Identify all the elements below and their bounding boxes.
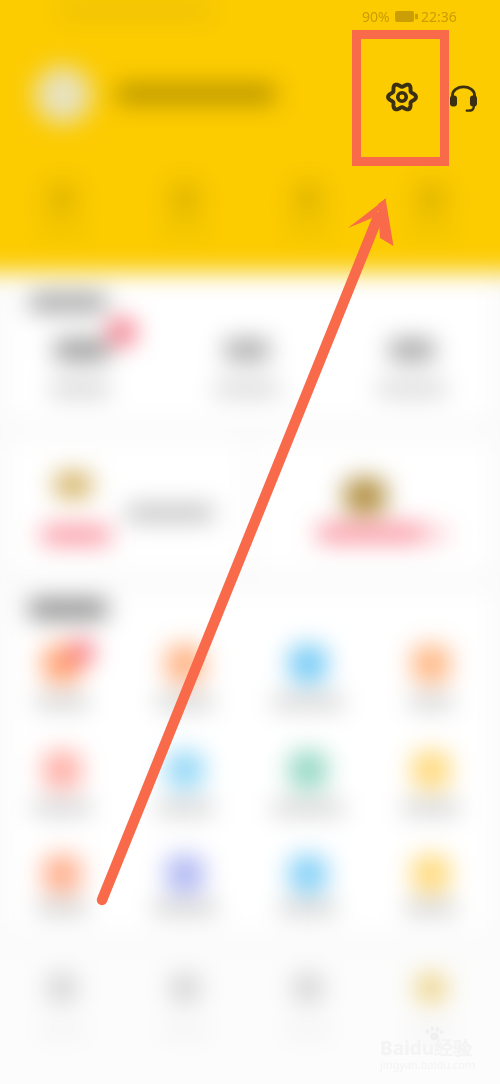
button[interactable]: Customer service	[450, 83, 477, 113]
button[interactable]: Service 5	[4, 736, 120, 826]
button[interactable]: Promotion two	[256, 442, 492, 570]
button[interactable]: Service 2	[127, 630, 243, 720]
button[interactable]: Service 8	[373, 736, 489, 826]
button[interactable]: Favourites	[130, 176, 240, 242]
button[interactable]: Service 6	[127, 736, 243, 826]
button[interactable]: Mine	[369, 958, 494, 1058]
staticText: 22:36	[421, 7, 457, 26]
button[interactable]: Settings	[385, 80, 419, 114]
button[interactable]: Service 12	[373, 840, 489, 930]
button[interactable]: Service 11	[250, 840, 366, 930]
button[interactable]: Cart	[246, 958, 371, 1058]
button[interactable]: Vouchers	[332, 280, 492, 418]
button[interactable]: Profile	[20, 58, 320, 134]
button[interactable]: My orders	[7, 176, 117, 242]
button[interactable]: Balance	[8, 280, 168, 418]
staticText: 90%	[362, 7, 390, 26]
button[interactable]: Service 7	[250, 736, 366, 826]
button[interactable]: Coupons	[253, 176, 363, 242]
staticText: Baidu经验	[380, 1035, 473, 1061]
button[interactable]: Home	[0, 958, 125, 1058]
button[interactable]: Service 4	[373, 630, 489, 720]
button[interactable]: Service 3	[250, 630, 366, 720]
button[interactable]: Service 10	[127, 840, 243, 930]
button[interactable]: Promotion one	[8, 442, 244, 570]
button[interactable]: Points	[170, 280, 330, 418]
button[interactable]: Categories	[123, 958, 248, 1058]
button[interactable]: Wallet	[376, 176, 486, 242]
button[interactable]: Service 1	[4, 630, 120, 720]
button[interactable]: Service 9	[4, 840, 120, 930]
